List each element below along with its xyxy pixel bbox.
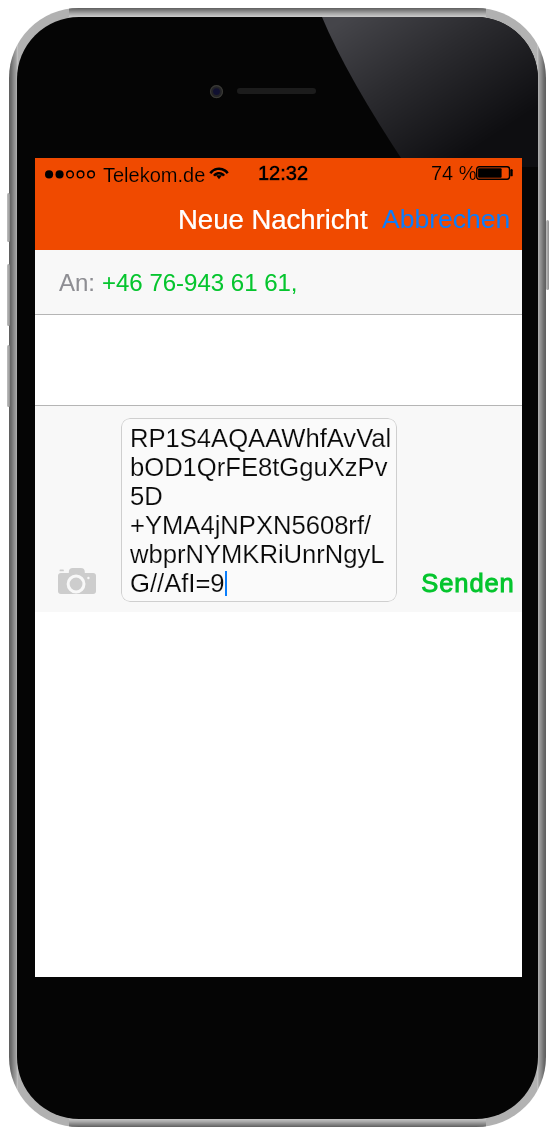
staticText: 5D: [130, 482, 163, 511]
staticText: An:: [59, 269, 96, 296]
staticText: +YMA4jNPXN5608rf/: [130, 511, 372, 540]
button[interactable]: Abbrechen: [375, 198, 515, 250]
button[interactable]: Kamera anhängen: [49, 553, 105, 609]
button[interactable]: Senden: [413, 557, 521, 609]
staticText: bOD1QrFE8tGguXzPv: [130, 453, 388, 482]
button[interactable]: RP1S4AQAAWhfAvVal: [121, 418, 397, 602]
staticText: 12:32: [258, 162, 309, 184]
staticText: +46 76-943 61 61,: [102, 269, 298, 296]
button[interactable]: An:: [35, 250, 522, 315]
staticText: G//AfI=9: [130, 569, 225, 598]
staticText: Telekom.de: [103, 164, 206, 186]
staticText: wbprNYMKRiUnrNgyL: [130, 540, 385, 569]
staticText: Neue Nachricht: [178, 204, 368, 235]
staticText: Abbrechen: [382, 204, 511, 234]
staticText: 74 %: [431, 162, 477, 184]
staticText: RP1S4AQAAWhfAvVal: [130, 424, 392, 453]
staticText: Senden: [421, 569, 515, 597]
